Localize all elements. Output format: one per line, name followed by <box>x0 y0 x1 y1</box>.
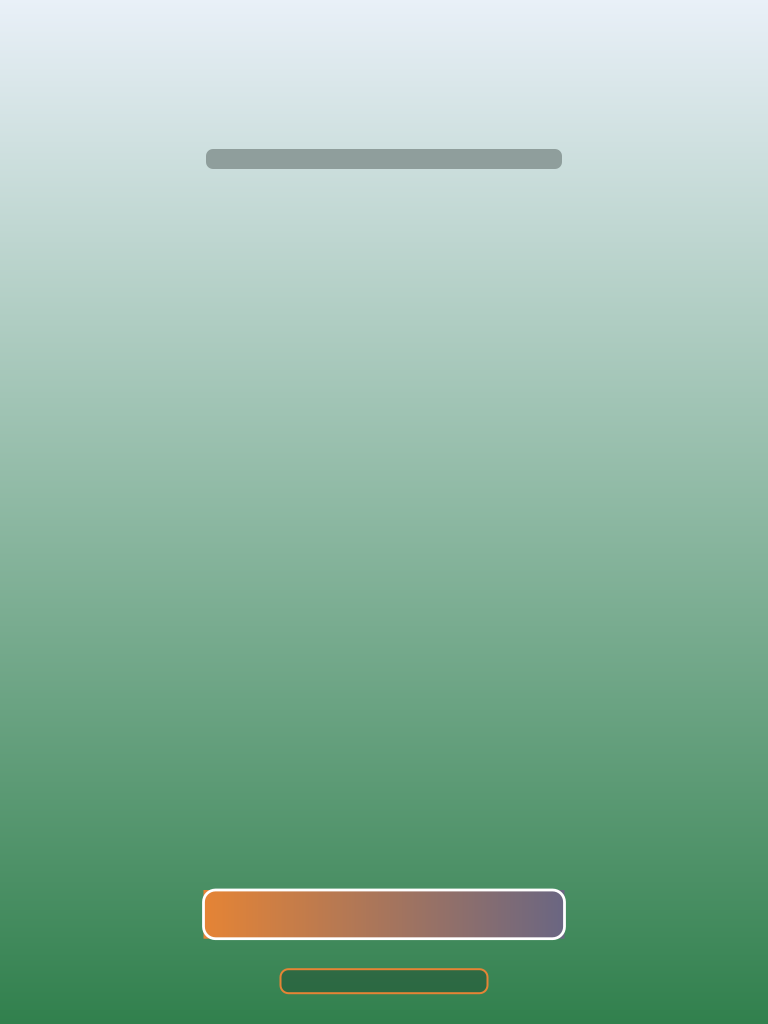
button[interactable]: Restore purchase <box>280 969 487 993</box>
button[interactable]: Continue <box>203 890 564 939</box>
